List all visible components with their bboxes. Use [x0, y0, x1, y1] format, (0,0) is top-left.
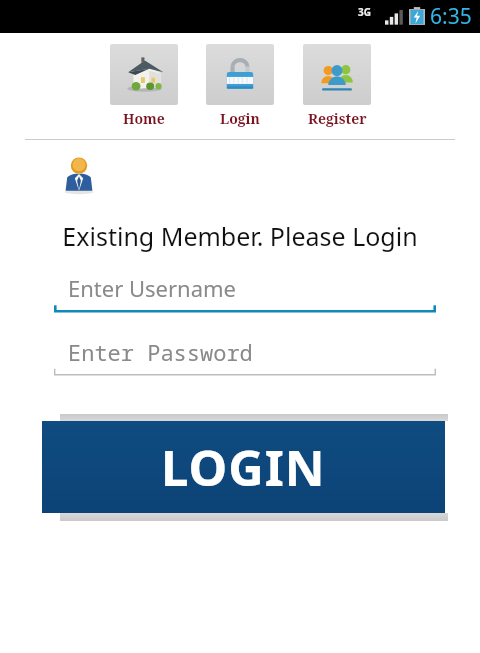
- button[interactable]: Enter Password: [54, 337, 436, 381]
- button[interactable]: Enter Username: [54, 273, 436, 317]
- staticText: Home: [123, 109, 165, 128]
- staticText: LOGIN: [161, 434, 326, 501]
- staticText: Existing Member. Please Login: [0, 219, 480, 253]
- button[interactable]: LOGIN: [42, 421, 445, 513]
- button[interactable]: Register: [303, 44, 371, 128]
- staticText: Register: [308, 109, 367, 128]
- button[interactable]: Login: [206, 44, 274, 128]
- staticText: Enter Password: [68, 337, 253, 367]
- button[interactable]: Home: [110, 44, 178, 128]
- staticText: 6:35: [430, 2, 472, 31]
- staticText: 3G: [358, 5, 371, 19]
- staticText: Login: [220, 109, 260, 128]
- staticText: Enter Username: [68, 273, 237, 303]
